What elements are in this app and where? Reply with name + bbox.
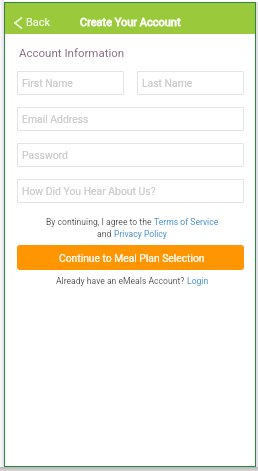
- button[interactable]: Terms of Service: [154, 217, 219, 227]
- button[interactable]: Back: [12, 14, 53, 31]
- staticText: Account Information: [19, 46, 125, 59]
- staticText: First Name: [22, 77, 73, 89]
- staticText: By continuing, I agree to the: [46, 217, 154, 227]
- button[interactable]: Continue to Meal Plan Selection: [17, 245, 244, 270]
- button[interactable]: Password: [17, 143, 244, 167]
- staticText: Last Name: [142, 77, 193, 89]
- staticText: Create Your Account: [80, 16, 181, 29]
- staticText: Continue to Meal Plan Selection: [59, 252, 205, 264]
- staticText: and: [97, 229, 114, 239]
- staticText: Password: [22, 149, 68, 161]
- staticText: Already have an eMeals Account?: [56, 276, 187, 286]
- staticText: Back: [26, 16, 51, 29]
- button[interactable]: How Did You Hear About Us?: [17, 179, 244, 203]
- other: Back: [14, 17, 22, 29]
- button[interactable]: Last Name: [137, 71, 244, 95]
- staticText: Email Address: [22, 113, 89, 125]
- button[interactable]: First Name: [17, 71, 124, 95]
- staticText: How Did You Hear About Us?: [22, 185, 156, 197]
- button[interactable]: Login: [187, 276, 209, 286]
- button[interactable]: Privacy Policy: [114, 229, 167, 239]
- button[interactable]: Email Address: [17, 107, 244, 131]
